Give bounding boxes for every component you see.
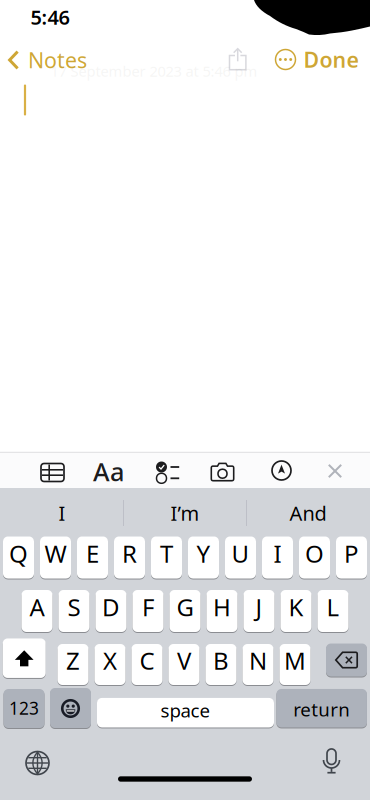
staticText: Notes [28, 46, 87, 74]
button[interactable]: Q [3, 536, 34, 578]
staticText: Q [9, 538, 28, 569]
button[interactable]: Z [57, 644, 88, 685]
staticText: U [231, 538, 249, 569]
staticText: V [177, 645, 191, 676]
staticText: E [86, 538, 99, 569]
button[interactable]: Share [228, 47, 247, 70]
button[interactable]: I’m [130, 493, 240, 533]
staticText: J [255, 591, 262, 623]
button[interactable]: Next keyboard [26, 751, 49, 774]
button[interactable]: X [94, 644, 125, 685]
staticText: M [284, 645, 306, 676]
staticText: Z [66, 645, 80, 676]
button[interactable]: E [77, 536, 108, 578]
button[interactable]: I [7, 493, 117, 533]
staticText: I [273, 538, 281, 569]
staticText: H [213, 591, 231, 623]
staticText: S [67, 591, 80, 623]
button[interactable]: And [253, 493, 363, 533]
button[interactable]: S [58, 590, 89, 632]
staticText: Done [303, 45, 358, 74]
button[interactable]: Checklist [156, 461, 180, 483]
staticText: K [288, 591, 303, 623]
button[interactable]: T [151, 536, 182, 578]
button[interactable]: Format [93, 455, 124, 488]
button[interactable]: A [21, 590, 52, 632]
staticText: I’m [170, 500, 199, 526]
staticText: N [249, 645, 267, 676]
button[interactable]: F [132, 590, 163, 632]
staticText: Aa [93, 455, 124, 488]
staticText: O [305, 538, 324, 569]
button[interactable]: J [243, 590, 274, 632]
button[interactable]: N [242, 644, 273, 685]
button[interactable]: K [280, 590, 311, 632]
button[interactable]: O [299, 536, 330, 578]
button[interactable]: G [169, 590, 200, 632]
staticText: L [326, 591, 339, 623]
button[interactable]: B [205, 644, 236, 685]
staticText: X [103, 645, 117, 676]
staticText: A [29, 591, 44, 623]
staticText: R [122, 538, 137, 569]
button[interactable]: Emoji [50, 688, 91, 728]
button[interactable]: R [114, 536, 145, 578]
button[interactable]: P [336, 536, 367, 578]
staticText: D [102, 591, 120, 623]
staticText: space [160, 698, 210, 723]
button[interactable]: H [206, 590, 237, 632]
button[interactable]: V [168, 644, 199, 685]
button[interactable]: D [95, 590, 126, 632]
button[interactable]: space [97, 698, 274, 727]
staticText: P [344, 538, 359, 569]
button[interactable]: Dismiss keyboard [328, 464, 342, 478]
staticText: W [44, 538, 66, 569]
button[interactable]: Dictate [323, 748, 340, 773]
staticText: 123 [9, 696, 39, 719]
button[interactable]: Insert table [41, 463, 64, 481]
button[interactable]: Markup [272, 461, 291, 480]
button[interactable]: Y [188, 536, 219, 578]
staticText: return [293, 697, 350, 722]
button[interactable]: 123 [3, 689, 44, 728]
staticText: T [160, 538, 173, 569]
button[interactable]: U [225, 536, 256, 578]
button[interactable]: I [262, 536, 293, 578]
button[interactable]: Delete [326, 643, 367, 676]
staticText: And [289, 500, 326, 526]
staticText: B [213, 645, 229, 676]
button[interactable]: C [131, 644, 162, 685]
staticText: Y [196, 538, 210, 569]
staticText: 5:46 [30, 4, 69, 30]
staticText: G [176, 591, 193, 623]
button[interactable]: More [274, 48, 296, 70]
staticText: F [142, 591, 154, 623]
button[interactable]: Notes [8, 43, 118, 77]
button[interactable]: W [40, 536, 71, 578]
button[interactable]: Camera [210, 462, 234, 481]
staticText: 17 September 2023 at 5:46 pm [50, 61, 257, 81]
staticText: C [139, 645, 154, 676]
button[interactable]: return [276, 689, 367, 727]
button[interactable]: Done [303, 45, 358, 74]
button[interactable]: Shift [3, 638, 46, 678]
staticText: I [58, 500, 65, 526]
button[interactable]: M [279, 644, 310, 685]
button[interactable]: L [317, 590, 348, 632]
